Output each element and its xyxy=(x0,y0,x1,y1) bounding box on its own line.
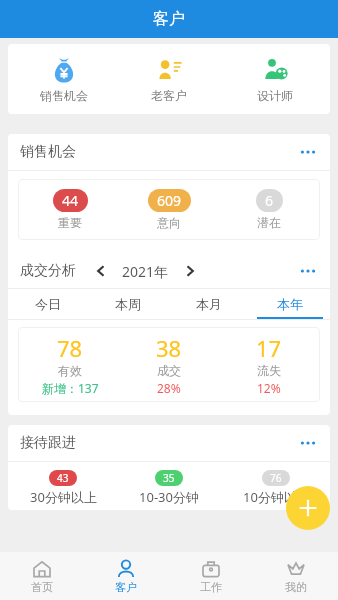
staticText: 今日 xyxy=(35,296,61,312)
button[interactable]: 工作 xyxy=(168,552,253,600)
button[interactable]: 今日 xyxy=(8,289,88,319)
staticText: 44 xyxy=(62,191,79,210)
button[interactable]: 本年 xyxy=(249,289,330,319)
staticText: 设计师 xyxy=(257,88,293,103)
button[interactable]: 销售机会 xyxy=(14,53,114,105)
button[interactable]: 本周 xyxy=(88,289,168,319)
staticText: 老客户 xyxy=(151,88,187,103)
staticText: 78 xyxy=(57,333,83,363)
button[interactable]: 76 xyxy=(224,470,328,506)
button[interactable]: 本月 xyxy=(168,289,249,319)
staticText: 本周 xyxy=(115,296,141,312)
staticText: 首页 xyxy=(31,580,53,594)
button[interactable]: 38 xyxy=(121,333,217,396)
staticText: 本月 xyxy=(196,296,222,312)
staticText: 成交 xyxy=(157,363,181,378)
staticText: 本年 xyxy=(277,296,303,312)
staticText: 2021年 xyxy=(122,262,169,281)
button[interactable]: 设计师 xyxy=(225,53,325,105)
button[interactable]: Add xyxy=(286,486,330,530)
button[interactable]: More options xyxy=(298,437,318,449)
staticText: 10分钟以下 xyxy=(243,488,310,506)
staticText: 17 xyxy=(256,333,282,363)
button[interactable]: 35 xyxy=(117,470,221,506)
button[interactable]: 销售机会 xyxy=(8,134,330,170)
staticText: 38 xyxy=(156,333,182,363)
button[interactable]: 接待跟进 xyxy=(8,425,330,461)
button[interactable]: Next year xyxy=(183,263,197,279)
staticText: 43 xyxy=(57,471,69,485)
staticText: 76 xyxy=(270,471,282,485)
staticText: 有效 xyxy=(58,363,82,378)
staticText: 新增：137 xyxy=(42,380,99,396)
staticText: 工作 xyxy=(200,580,222,594)
staticText: 流失 xyxy=(257,363,281,378)
button[interactable]: Previous year xyxy=(94,263,108,279)
staticText: 6 xyxy=(265,191,274,210)
staticText: 销售机会 xyxy=(20,143,76,161)
staticText: 28% xyxy=(157,380,181,396)
staticText: 潜在 xyxy=(257,215,281,230)
staticText: 重要 xyxy=(58,215,82,230)
staticText: 我的 xyxy=(285,580,307,594)
button[interactable]: 老客户 xyxy=(119,53,219,105)
button[interactable]: 17 xyxy=(221,333,317,396)
staticText: 30分钟以上 xyxy=(30,488,97,506)
button[interactable]: More options xyxy=(298,265,318,277)
button[interactable]: 6 xyxy=(221,189,317,230)
staticText: 35 xyxy=(163,471,175,485)
staticText: 10-30分钟 xyxy=(139,488,199,506)
staticText: 609 xyxy=(157,191,182,210)
staticText: 销售机会 xyxy=(40,88,88,103)
button[interactable]: More options xyxy=(298,146,318,158)
staticText: 12% xyxy=(257,380,281,396)
staticText: 意向 xyxy=(157,215,181,230)
staticText: 成交分析 xyxy=(20,262,76,280)
button[interactable]: 43 xyxy=(11,470,115,506)
staticText: 客户 xyxy=(115,580,137,594)
button[interactable]: 609 xyxy=(121,189,217,230)
button[interactable]: 44 xyxy=(22,189,118,230)
button[interactable]: 客户 xyxy=(84,552,168,600)
button[interactable]: 我的 xyxy=(253,552,338,600)
button[interactable]: 首页 xyxy=(0,552,84,600)
button[interactable]: 78 xyxy=(22,333,118,396)
staticText: 接待跟进 xyxy=(20,434,76,452)
staticText: 客户 xyxy=(153,9,185,29)
